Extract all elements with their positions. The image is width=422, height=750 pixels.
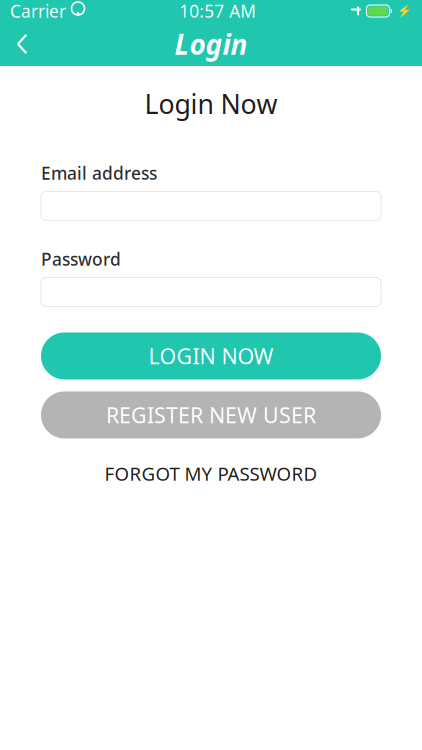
staticText: Login Now xyxy=(144,86,277,121)
button[interactable]: Back xyxy=(0,22,44,66)
staticText: LOGIN NOW xyxy=(148,342,273,370)
button[interactable]: FORGOT MY PASSWORD xyxy=(41,455,381,491)
staticText: Password xyxy=(41,247,121,270)
staticText: REGISTER NEW USER xyxy=(106,401,316,429)
staticText: Login xyxy=(174,25,247,63)
staticText: FORGOT MY PASSWORD xyxy=(104,461,317,486)
staticText: Carrier xyxy=(10,0,66,22)
button[interactable]: REGISTER NEW USER xyxy=(41,391,381,438)
staticText: 10:57 AM xyxy=(179,0,256,22)
staticText: ⚡ xyxy=(397,4,412,18)
staticText: Email address xyxy=(41,161,157,184)
button[interactable]: LOGIN NOW xyxy=(41,332,381,379)
